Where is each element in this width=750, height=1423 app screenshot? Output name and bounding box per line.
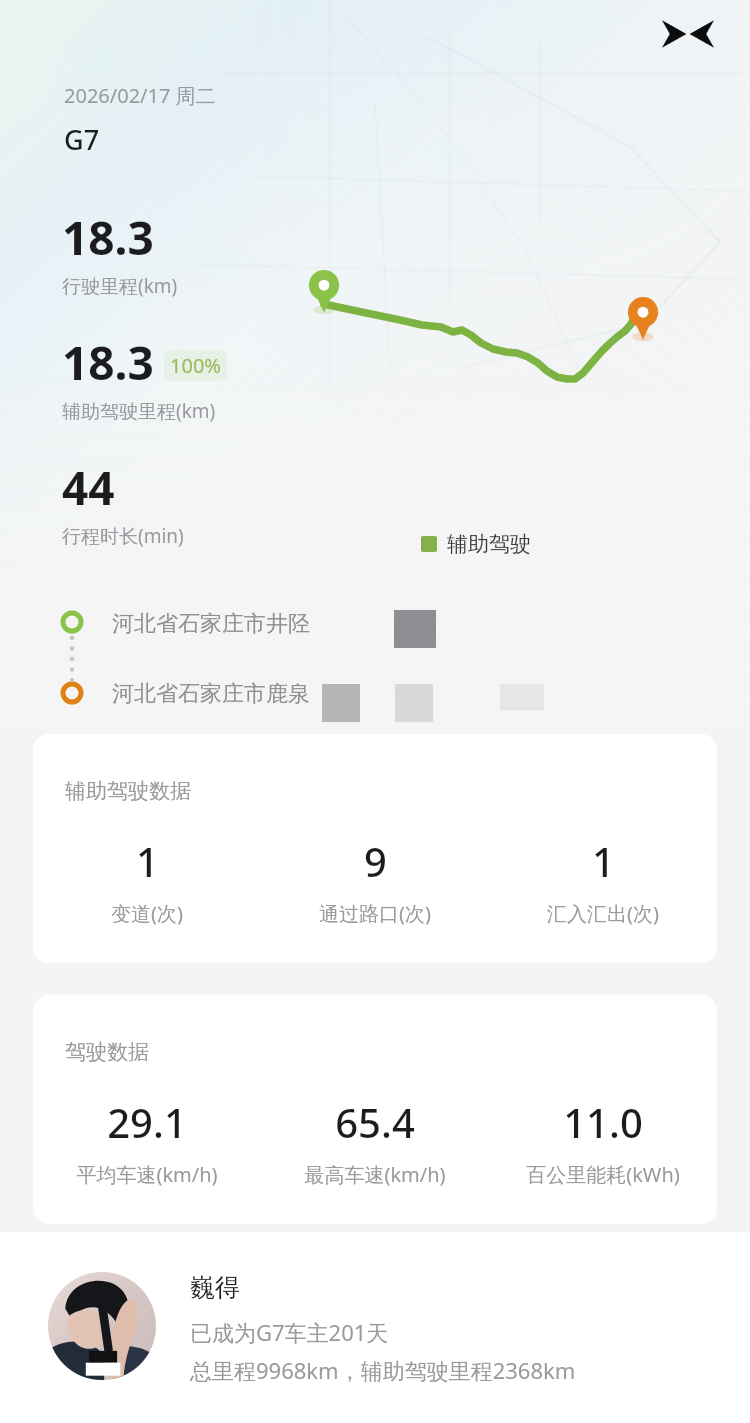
staticText: 11.0 xyxy=(563,1095,643,1149)
staticText: 已成为G7车主201天 xyxy=(190,1317,389,1347)
staticText: 29.1 xyxy=(107,1095,187,1149)
staticText: 辅助驾驶里程(km) xyxy=(62,398,216,424)
staticText: 河北省石家庄市鹿泉 xyxy=(112,680,310,708)
staticText: 18.3 xyxy=(62,206,154,269)
staticText: 汇入汇出(次) xyxy=(547,900,659,927)
staticText: 9 xyxy=(364,834,387,888)
staticText: 行程时长(min) xyxy=(62,523,184,549)
staticText: 驾驶数据 xyxy=(65,1039,149,1065)
staticText: 行驶里程(km) xyxy=(62,273,178,299)
button[interactable]: 驾驶数据 xyxy=(33,995,717,1224)
button[interactable]: 辅助驾驶数据 xyxy=(33,734,717,963)
staticText: 2026/02/17 周二 xyxy=(64,82,216,109)
staticText: 辅助驾驶数据 xyxy=(65,778,191,804)
staticText: 辅助驾驶 xyxy=(447,531,531,557)
staticText: 18.3 xyxy=(62,331,154,394)
staticText: 44 xyxy=(62,456,115,519)
staticText: 通过路口(次) xyxy=(319,900,431,927)
staticText: 最高车速(km/h) xyxy=(304,1161,446,1188)
staticText: 巍得 xyxy=(190,1272,240,1303)
staticText: 1 xyxy=(136,834,159,888)
staticText: 河北省石家庄市井陉 xyxy=(112,610,310,638)
staticText: 平均车速(km/h) xyxy=(76,1161,218,1188)
button[interactable]: 巍得 xyxy=(0,1232,750,1423)
staticText: 总里程9968km，辅助驾驶里程2368km xyxy=(190,1355,576,1385)
staticText: 变道(次) xyxy=(111,900,183,927)
button[interactable]: XPeng logo xyxy=(656,12,720,56)
staticText: G7 xyxy=(64,121,100,158)
staticText: 65.4 xyxy=(335,1095,415,1149)
staticText: 百公里能耗(kWh) xyxy=(526,1161,680,1188)
staticText: 100% xyxy=(170,352,221,379)
staticText: 1 xyxy=(592,834,615,888)
